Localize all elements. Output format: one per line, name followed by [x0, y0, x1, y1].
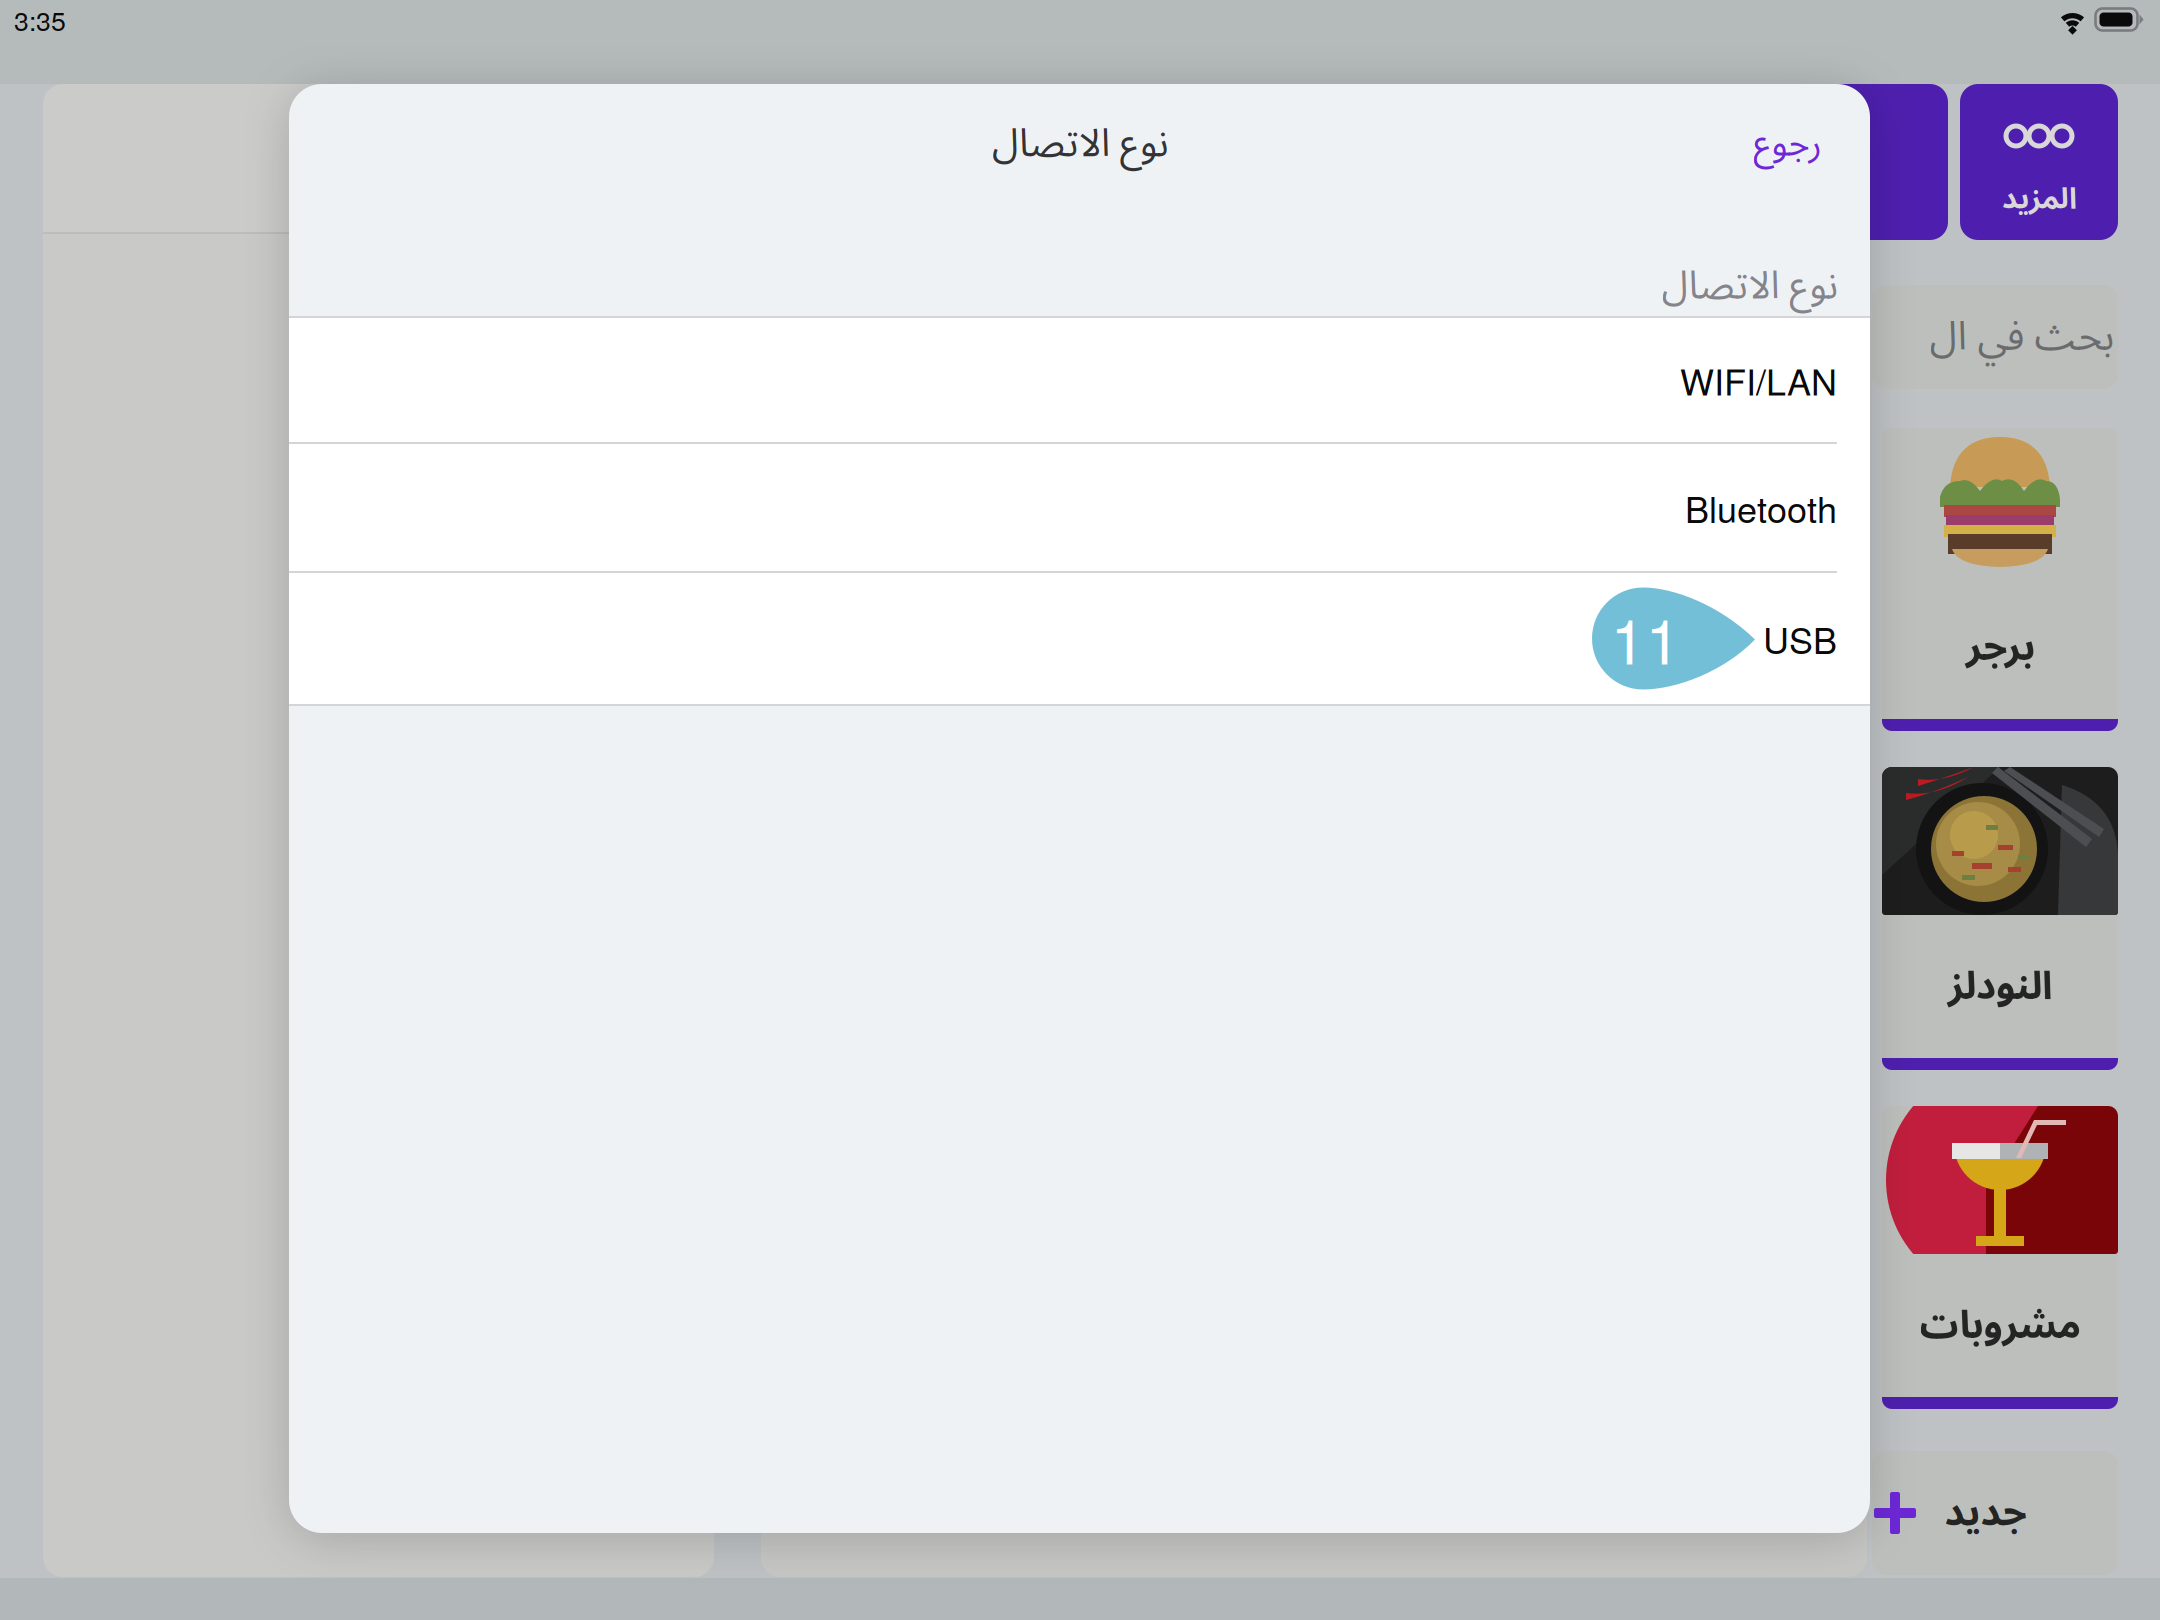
staticText: برجر: [1965, 607, 2034, 688]
staticText: نوع الاتصال: [1661, 245, 1837, 327]
staticText: نوع الاتصال: [991, 103, 1167, 185]
button[interactable]: المزيد: [1960, 84, 2118, 240]
staticText: مشروبات: [1919, 1285, 2081, 1366]
button[interactable]: بحث في ال: [1872, 285, 2118, 389]
button[interactable]: رجوع: [1743, 90, 1831, 198]
staticText: Bluetooth: [1685, 482, 1837, 533]
button[interactable]: النودلز: [1882, 767, 2118, 1070]
staticText: النودلز: [1947, 946, 2052, 1027]
staticText: WIFI/LAN: [1680, 354, 1837, 406]
button[interactable]: إجراء: [1790, 84, 1948, 240]
button[interactable]: Bluetooth: [289, 444, 1870, 571]
button[interactable]: مشروبات: [1882, 1106, 2118, 1409]
button[interactable]: جديد: [1872, 1451, 2118, 1575]
staticText: رجوع: [1753, 106, 1821, 182]
staticText: جديد: [1944, 1472, 2026, 1554]
staticText: 11: [1610, 593, 1680, 682]
button[interactable]: 11: [289, 573, 1870, 704]
button[interactable]: WIFI/LAN: [289, 318, 1870, 442]
staticText: USB: [1763, 613, 1837, 664]
button[interactable]: برجر: [1882, 428, 2118, 731]
staticText: المزيد: [2001, 168, 2076, 230]
staticText: بحث في ال: [1929, 295, 2114, 379]
staticText: 3:35: [14, 0, 66, 39]
